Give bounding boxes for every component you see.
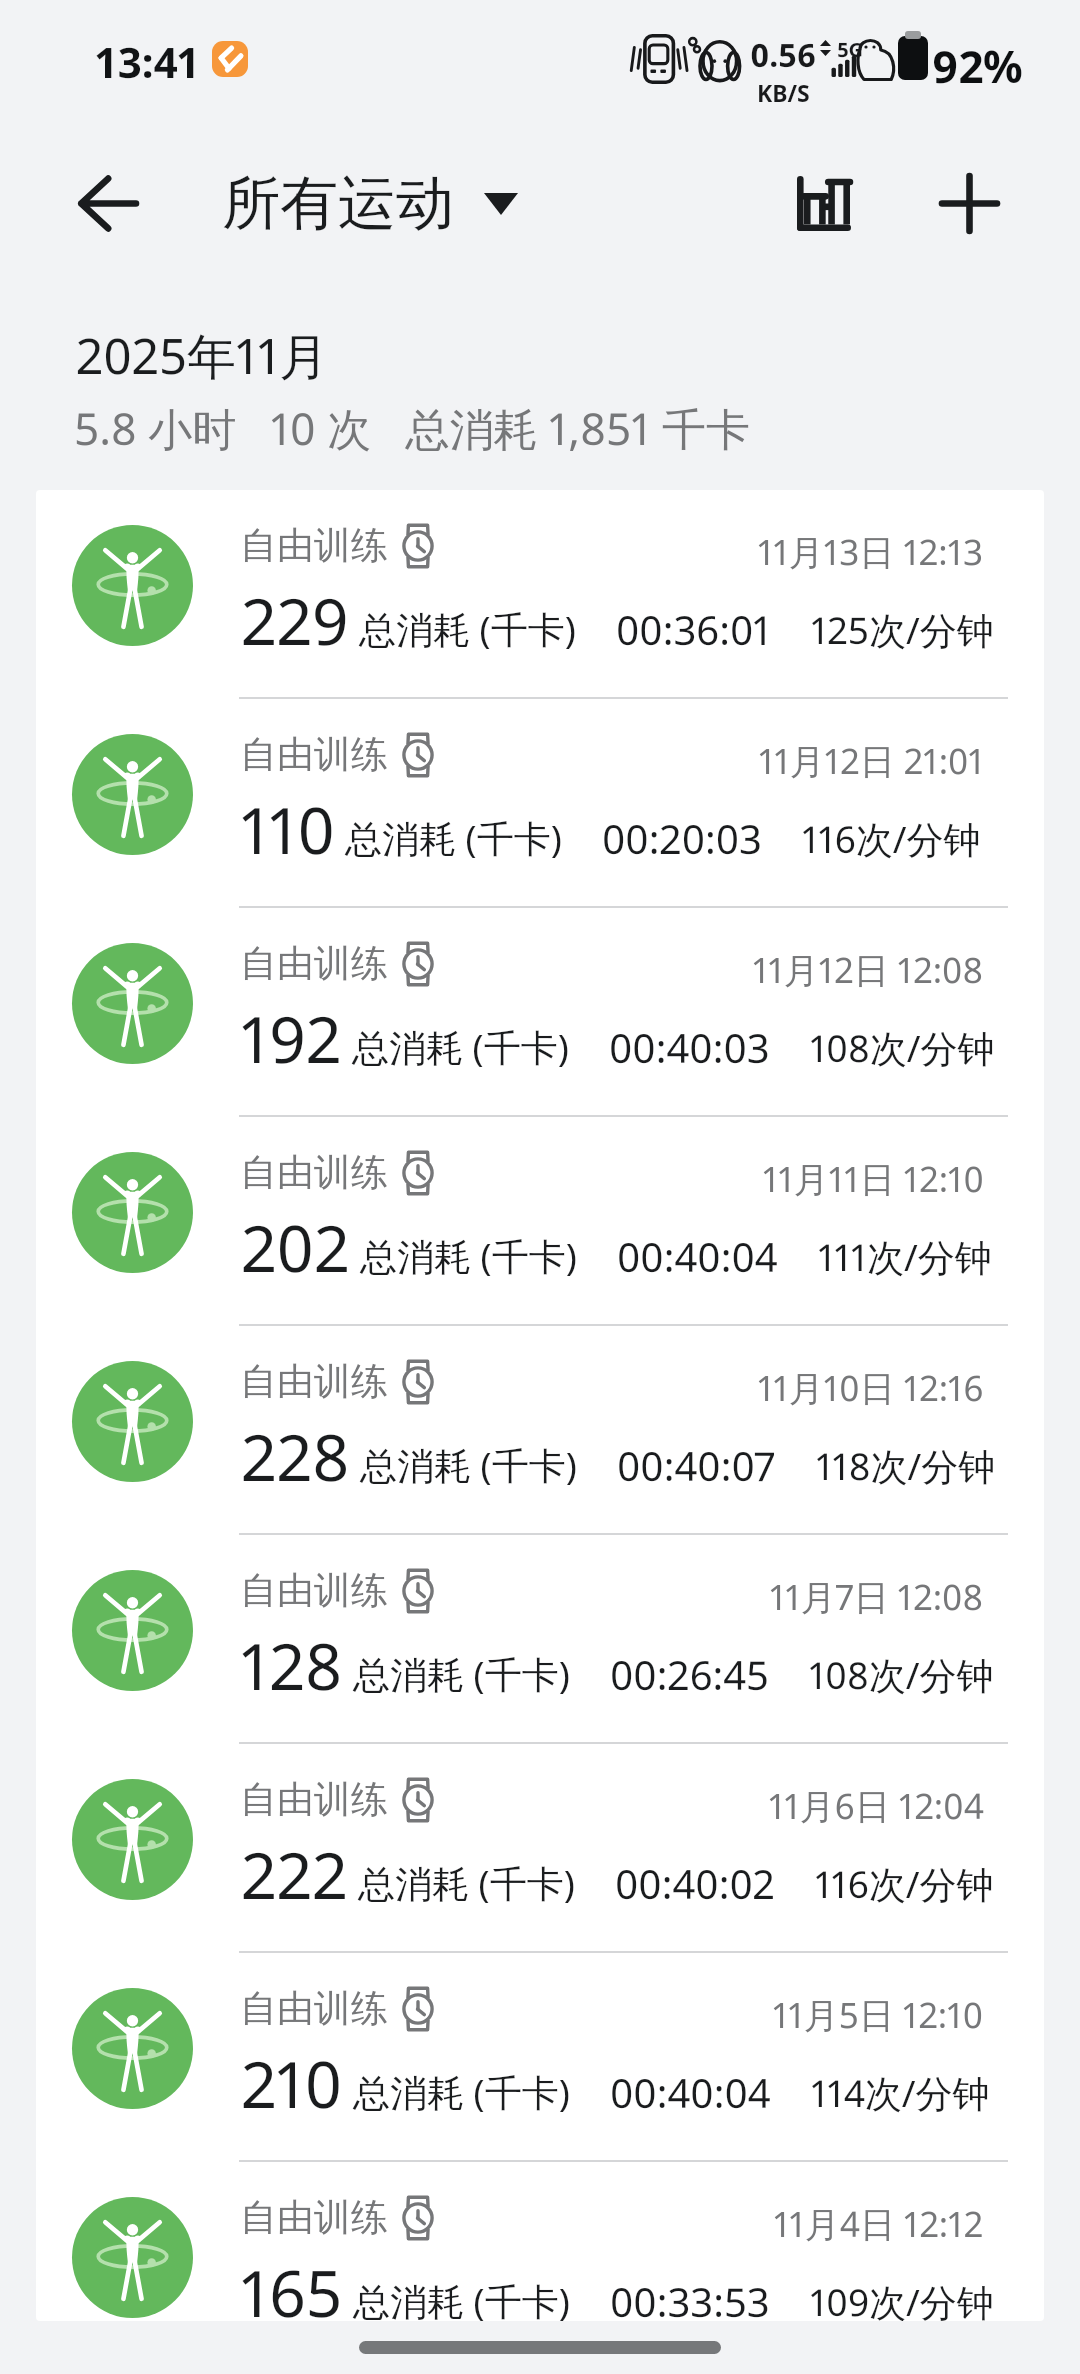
staticText: 自由训练 (240, 731, 388, 778)
staticText: 108次/分钟 (809, 1649, 994, 1700)
button[interactable]: 自由训练 (36, 1326, 1044, 1535)
staticText: 总消耗 (千卡) (345, 812, 562, 863)
staticText: 165 (241, 2249, 343, 2321)
staticText: 自由训练 (240, 1985, 388, 2032)
staticText: 自由训练 (240, 1567, 388, 1614)
staticText: 222 (241, 1831, 348, 1918)
staticText: 11月13日 12:13 (758, 528, 984, 576)
staticText: 00:40:04 (617, 1229, 778, 1283)
staticText: 00:40:02 (615, 1856, 775, 1910)
staticText: 00:40:04 (610, 2065, 771, 2119)
staticText: 11月11日 12:10 (763, 1155, 984, 1203)
staticText: 所有运动 (222, 167, 454, 240)
button[interactable]: 自由训练 (36, 2162, 1044, 2321)
button[interactable]: 自由训练 (36, 490, 1044, 699)
staticText: 自由训练 (240, 1358, 388, 1405)
staticText: 192 (241, 995, 342, 1082)
button[interactable]: 自由训练 (36, 908, 1044, 1117)
button[interactable]: 自由训练 (36, 699, 1044, 908)
staticText: 总消耗 (千卡) (353, 2066, 570, 2117)
staticText: 11月6日 12:04 (769, 1782, 984, 1830)
staticText: 11月12日 12:08 (753, 946, 984, 994)
staticText: 202 (241, 1204, 350, 1291)
staticText: 11月4日 12:12 (774, 2200, 984, 2248)
staticText: 总消耗 (千卡) (360, 1230, 577, 1281)
staticText: 自由训练 (240, 1149, 388, 1196)
staticText: 00:20:03 (602, 811, 762, 865)
staticText: 111次/分钟 (818, 1231, 992, 1282)
staticText: 自由训练 (240, 522, 388, 569)
staticText: 92% (932, 36, 1023, 96)
staticText: 00:36:01 (616, 602, 771, 656)
staticText: 229 (241, 577, 349, 664)
staticText: 总消耗 (千卡) (359, 603, 576, 654)
staticText: 128 (241, 1622, 343, 1709)
staticText: 5.8 小时 10 次 总消耗 1,851 千卡 (74, 398, 751, 458)
staticText: 116次/分钟 (802, 813, 981, 864)
staticText: 总消耗 (千卡) (353, 2275, 570, 2321)
staticText: 00:40:07 (617, 1438, 776, 1492)
staticText: 11月7日 12:08 (770, 1573, 984, 1621)
staticText: 00:40:03 (609, 1020, 770, 1074)
staticText: 11月10日 12:16 (758, 1364, 984, 1412)
staticText: 11月12日 21:01 (759, 737, 984, 785)
button[interactable]: Back (44, 140, 170, 266)
staticText: KB/S (757, 77, 810, 108)
button[interactable]: 自由训练 (36, 1953, 1044, 2162)
staticText: 118次/分钟 (816, 1440, 996, 1491)
button[interactable]: 所有运动 (222, 167, 518, 240)
staticText: 125次/分钟 (811, 604, 994, 655)
staticText: 108次/分钟 (810, 1022, 995, 1073)
staticText: 228 (241, 1413, 350, 1500)
staticText: 00:33:53 (610, 2274, 770, 2321)
staticText: 116次/分钟 (815, 1858, 994, 1909)
staticText: 0.56 (750, 33, 817, 77)
staticText: 110 (241, 786, 335, 873)
staticText: 总消耗 (千卡) (353, 1648, 570, 1699)
button[interactable]: Statistics (761, 140, 887, 266)
staticText: 00:26:45 (610, 1647, 769, 1701)
staticText: 210 (241, 2040, 343, 2127)
button[interactable]: 自由训练 (36, 1117, 1044, 1326)
staticText: 总消耗 (千卡) (360, 1439, 577, 1490)
button[interactable]: 自由训练 (36, 1535, 1044, 1744)
staticText: 总消耗 (千卡) (358, 1857, 575, 1908)
staticText: 自由训练 (240, 1776, 388, 1823)
staticText: 自由训练 (240, 940, 388, 987)
staticText: 13:41 (96, 33, 200, 90)
button[interactable]: 自由训练 (36, 1744, 1044, 1953)
staticText: 总消耗 (千卡) (352, 1021, 569, 1072)
staticText: 11月5日 12:10 (773, 1991, 984, 2039)
staticText: 109次/分钟 (810, 2276, 994, 2321)
button[interactable]: Add (906, 140, 1032, 266)
staticText: 自由训练 (240, 2194, 388, 2241)
staticText: 5G (837, 36, 864, 63)
staticText: 2025年11月 (76, 322, 329, 389)
staticText: 114次/分钟 (811, 2067, 990, 2118)
